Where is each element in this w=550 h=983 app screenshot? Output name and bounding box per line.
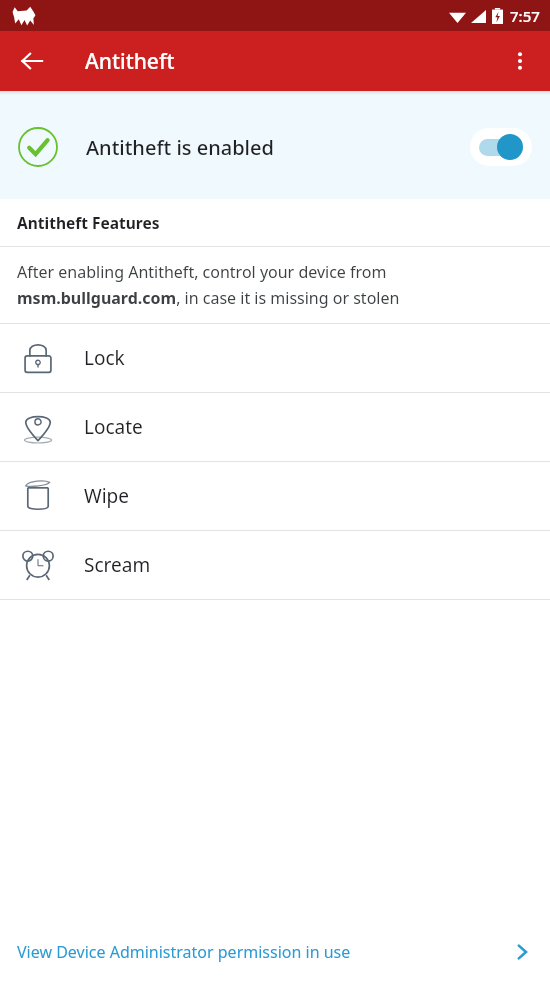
button[interactable]: More options <box>496 37 544 85</box>
staticText: Antitheft is enabled <box>86 134 274 161</box>
staticText: Antitheft <box>85 47 175 76</box>
button[interactable]: Back <box>8 37 56 85</box>
button[interactable]: View Device Administrator permission in … <box>0 921 550 983</box>
button[interactable]: Antitheft toggle <box>470 128 532 166</box>
button[interactable]: Lock <box>0 324 550 392</box>
button[interactable]: Wipe <box>0 462 550 530</box>
staticText: View Device Administrator permission in … <box>17 941 351 963</box>
button[interactable]: Antitheft is enabled <box>0 95 550 199</box>
staticText: After enabling Antitheft, control your d… <box>17 261 400 309</box>
staticText: Lock <box>84 345 125 371</box>
staticText: Locate <box>84 414 143 440</box>
staticText: Antitheft Features <box>17 212 160 233</box>
button[interactable]: Locate <box>0 393 550 461</box>
button[interactable]: Scream <box>0 531 550 599</box>
staticText: 7:57 <box>510 6 540 26</box>
staticText: Wipe <box>84 483 129 509</box>
staticText: Scream <box>84 552 151 578</box>
